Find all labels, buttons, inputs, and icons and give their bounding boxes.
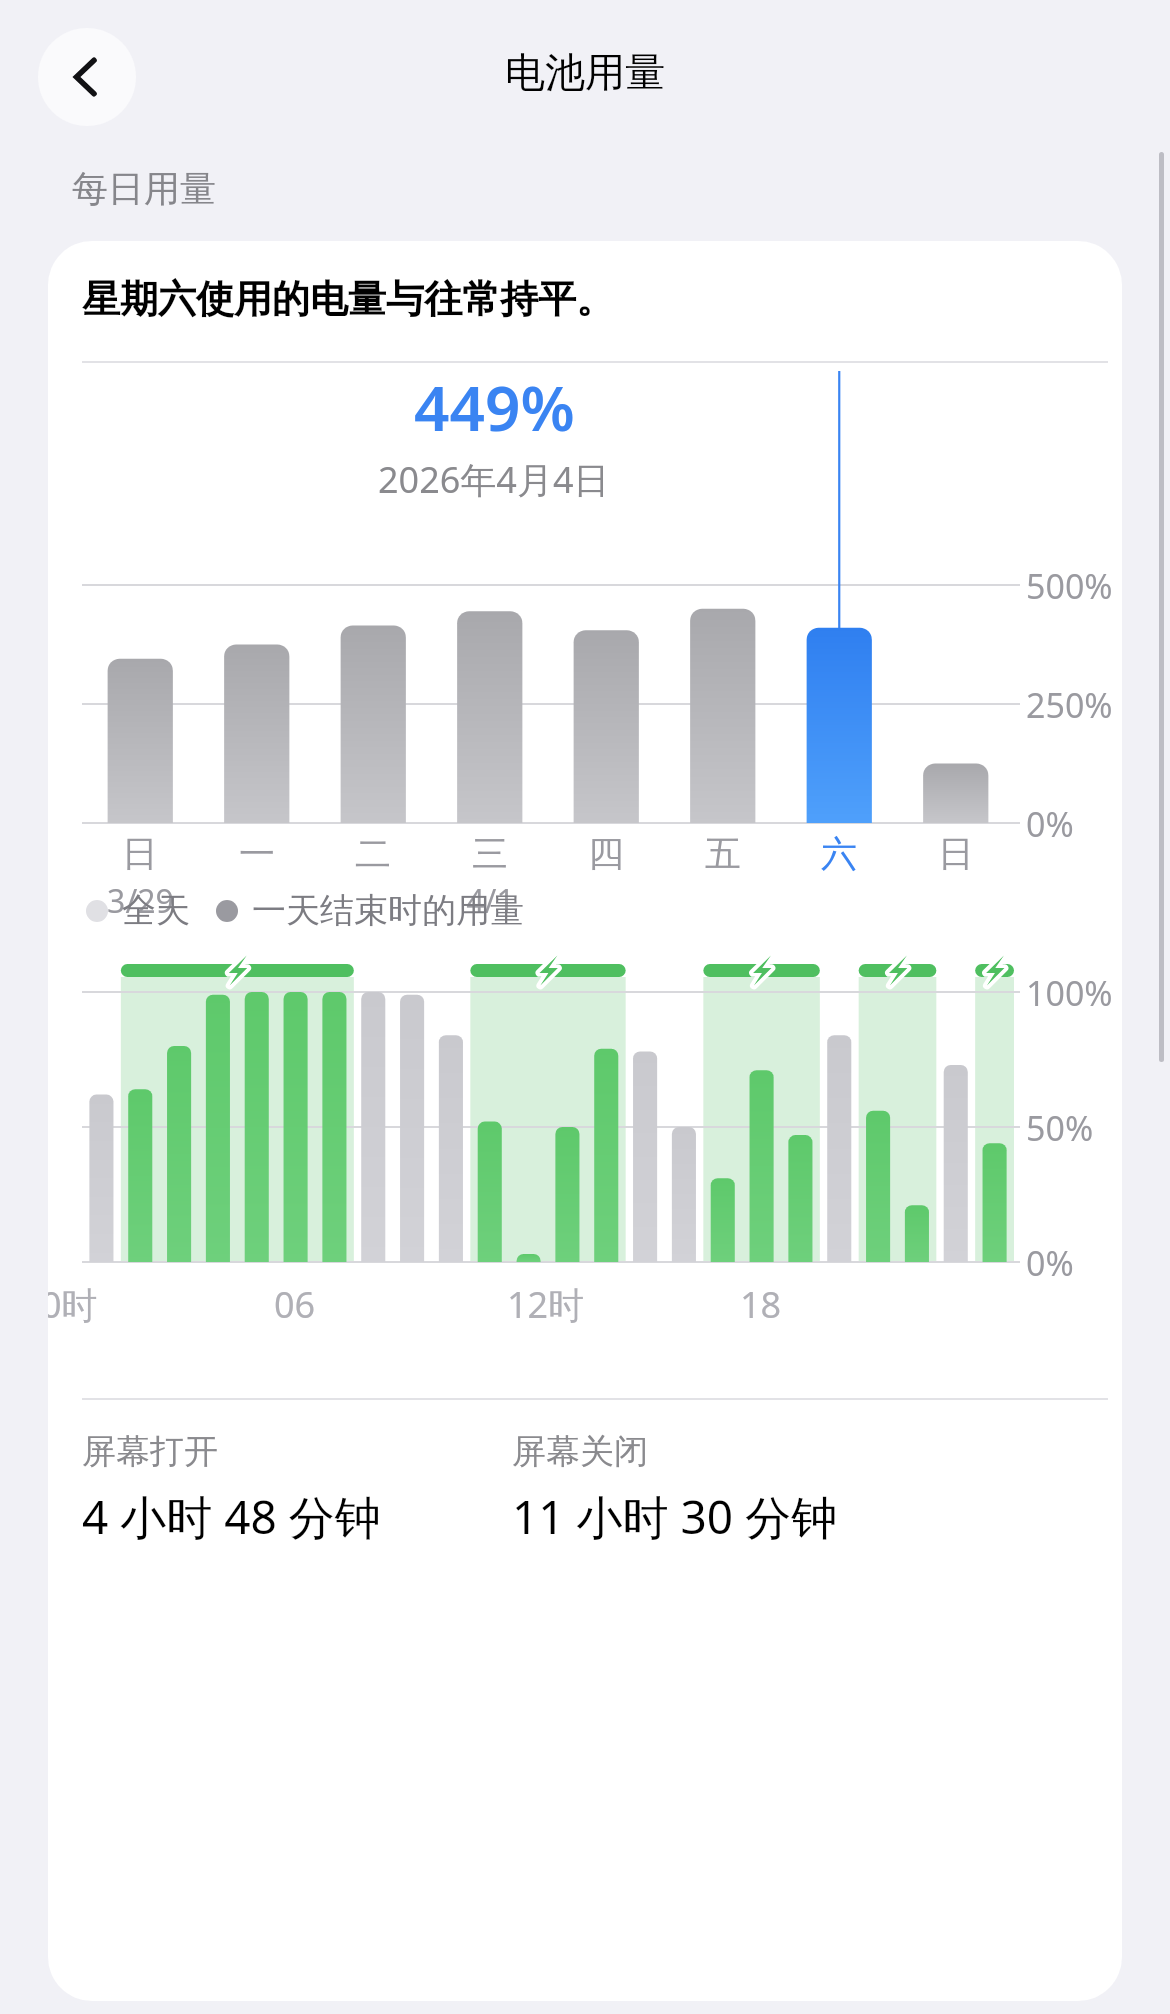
staticText: 11 小时 30 分钟 <box>512 1485 838 1548</box>
staticText: 每日用量 <box>72 166 216 211</box>
staticText: 一天结束时的用量 <box>252 889 524 932</box>
staticText: 100% <box>1026 970 1113 1016</box>
staticText: 屏幕关闭 <box>512 1430 648 1473</box>
button[interactable]: 屏幕关闭 <box>512 1430 1122 1548</box>
staticText: 500% <box>1026 563 1113 609</box>
staticText: 50% <box>1026 1105 1094 1151</box>
staticText: 五 <box>705 831 741 876</box>
staticText: 2026年4月4日 <box>378 455 610 504</box>
staticText: 250% <box>1026 682 1113 728</box>
staticText: 06 <box>274 1280 316 1329</box>
staticText: 屏幕打开 <box>82 1430 218 1473</box>
staticText: 3/29 <box>107 879 174 923</box>
staticText: 星期六使用的电量与往常持平。 <box>82 275 614 323</box>
staticText: 三 <box>472 831 508 876</box>
staticText: 六 <box>821 831 857 876</box>
button[interactable] <box>48 932 1122 1372</box>
staticText: 18 <box>740 1280 782 1329</box>
staticText: 一 <box>239 831 275 876</box>
staticText: 日 <box>122 831 158 876</box>
staticText: 12时 <box>507 1280 585 1329</box>
staticText: 0% <box>1026 801 1074 847</box>
staticText: 日 <box>938 831 974 876</box>
button[interactable] <box>48 363 1122 883</box>
staticText: 4 小时 48 分钟 <box>82 1485 381 1548</box>
staticText: 0时 <box>48 1280 98 1329</box>
staticText: 二 <box>355 831 391 876</box>
staticText: 四 <box>588 831 624 876</box>
staticText: 全天 <box>122 889 190 932</box>
button[interactable]: Back <box>38 28 136 126</box>
staticText: 电池用量 <box>505 47 665 97</box>
staticText: 0% <box>1026 1240 1074 1286</box>
staticText: 4/1 <box>466 879 515 923</box>
staticText: 449% <box>414 365 575 449</box>
button[interactable]: 屏幕打开 <box>82 1430 512 1548</box>
button[interactable]: 全天 <box>86 889 524 932</box>
